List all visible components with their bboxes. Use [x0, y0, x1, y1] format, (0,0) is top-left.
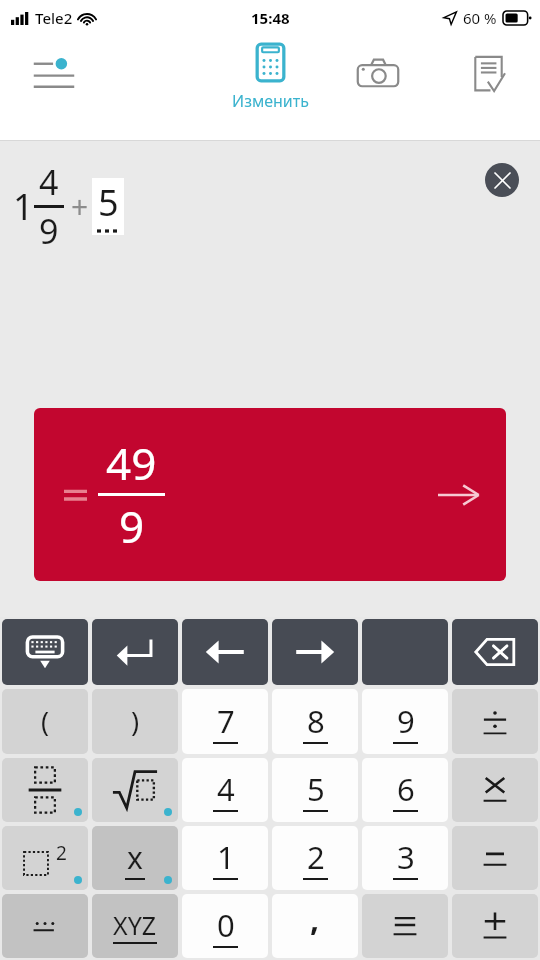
button[interactable]: 8 [272, 689, 358, 754]
button[interactable]: Hide keyboard [2, 619, 88, 685]
button[interactable]: Left [182, 619, 268, 685]
button[interactable]: Multiply [452, 758, 538, 822]
button[interactable]: Right [272, 619, 358, 685]
staticText: 1 [217, 836, 235, 878]
button[interactable]: Divide [452, 689, 538, 754]
staticText: 2 [307, 836, 325, 878]
button[interactable]: 2 [272, 826, 358, 890]
staticText: 7 [217, 700, 235, 742]
staticText: Изменить [232, 90, 309, 112]
staticText: 4 [217, 768, 235, 810]
staticText: 9 [119, 496, 145, 556]
button[interactable]: 1 [182, 826, 268, 890]
button[interactable]: Square root [92, 758, 178, 822]
button[interactable]: 7 [182, 689, 268, 754]
button[interactable]: 5 [272, 758, 358, 822]
button[interactable]: Notes [448, 46, 528, 102]
button[interactable]: 0 [182, 894, 268, 958]
button[interactable]: Settings [14, 46, 94, 102]
staticText: ( [41, 703, 50, 740]
button[interactable]: 3 [362, 826, 448, 890]
button[interactable]: Equals [362, 894, 448, 958]
button[interactable]: Next step [432, 468, 486, 522]
button[interactable]: More [2, 894, 88, 958]
staticText: + [71, 186, 89, 227]
staticText: 9 [397, 700, 415, 742]
button[interactable]: Fraction [2, 758, 88, 822]
button[interactable]: Изменить [205, 42, 335, 112]
button[interactable]: Comma [272, 894, 358, 958]
button[interactable]: Open paren [2, 689, 88, 754]
staticText: x [127, 837, 143, 878]
staticText: 6 [397, 768, 415, 810]
button[interactable]: Backspace [452, 619, 538, 685]
button[interactable]: Enter [92, 619, 178, 685]
button[interactable]: Power [2, 826, 88, 890]
button[interactable]: 4 [182, 758, 268, 822]
button[interactable]: Plus [452, 894, 538, 958]
button[interactable]: Close [485, 163, 519, 197]
staticText: XYZ [113, 908, 157, 942]
staticText: 4 [39, 159, 59, 205]
staticText: ) [131, 703, 140, 740]
staticText: 2 [56, 840, 67, 866]
staticText: 9 [39, 208, 59, 254]
button[interactable]: Minus [452, 826, 538, 890]
staticText: 15:48 [251, 8, 290, 28]
staticText: 49 [106, 433, 157, 493]
staticText: 5 [98, 178, 119, 227]
staticText: 5 [307, 768, 325, 810]
staticText: , [310, 897, 320, 941]
staticText: 60 % [463, 8, 497, 28]
staticText: 0 [217, 904, 235, 946]
button[interactable]: Variable x [92, 826, 178, 890]
button[interactable]: 9 [362, 689, 448, 754]
button[interactable]: Camera [338, 46, 418, 102]
button[interactable]: 49 [34, 408, 506, 581]
staticText: 8 [307, 700, 325, 742]
button[interactable]: XYZ [92, 894, 178, 958]
staticText: 3 [397, 836, 415, 878]
button[interactable]: Blank [362, 619, 448, 685]
button[interactable]: 6 [362, 758, 448, 822]
staticText: Tele2 [35, 8, 73, 28]
button[interactable]: Close paren [92, 689, 178, 754]
staticText: 1 [13, 182, 34, 231]
